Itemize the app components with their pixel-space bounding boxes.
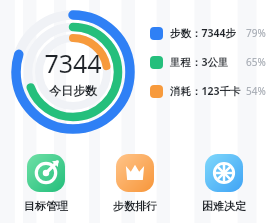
staticText: 步数：7344步 (170, 26, 237, 40)
staticText: 54% (246, 84, 266, 98)
staticText: 困难决定 (202, 199, 246, 213)
staticText: 今日步数 (49, 83, 97, 98)
button[interactable]: 目标管理 (6, 154, 86, 213)
button[interactable]: 消耗：123千卡 (150, 84, 266, 98)
staticText: 65% (246, 55, 266, 69)
staticText: 79% (246, 26, 266, 40)
button[interactable]: 困难决定 (184, 154, 264, 213)
button[interactable]: 步数排行 (95, 154, 175, 213)
staticText: 目标管理 (24, 199, 68, 213)
button[interactable]: 步数：7344步 (150, 26, 266, 40)
staticText: 里程：3公里 (170, 55, 229, 69)
staticText: 消耗：123千卡 (170, 84, 241, 98)
staticText: 7344 (44, 46, 102, 80)
staticText: 步数排行 (113, 199, 157, 213)
button[interactable]: 里程：3公里 (150, 55, 266, 69)
